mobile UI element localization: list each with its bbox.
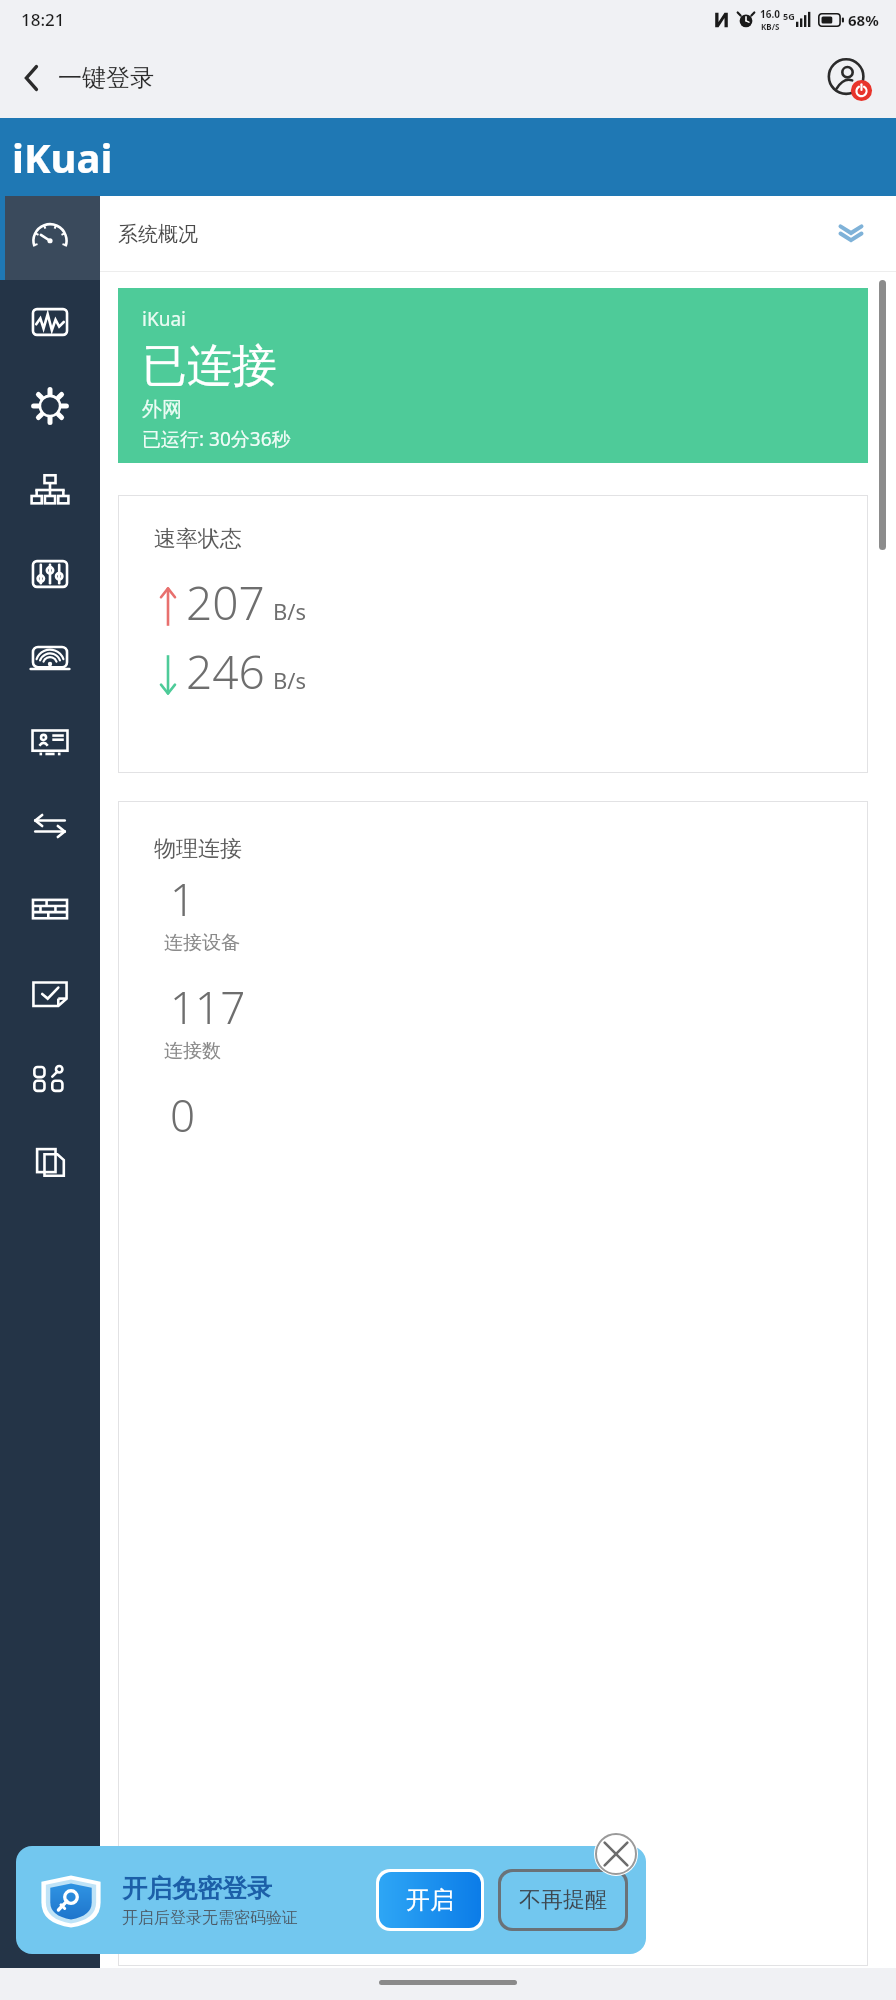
staticText: 0: [170, 1085, 196, 1145]
button[interactable]: Account power: [822, 51, 876, 105]
staticText: 连接设备: [164, 931, 240, 955]
other: Back: [22, 63, 42, 93]
staticText: 外网: [142, 397, 182, 422]
button[interactable]: iKuai: [118, 288, 868, 463]
button[interactable]: Logs: [0, 1120, 100, 1204]
other: Expand: [836, 222, 866, 246]
staticText: 已运行: 30分36秒: [142, 426, 291, 452]
button[interactable]: Close: [594, 1832, 638, 1876]
staticText: 开启: [406, 1885, 454, 1915]
staticText: B/s: [273, 665, 307, 695]
staticText: 开启免密登录: [122, 1873, 272, 1904]
staticText: 5G: [783, 10, 795, 22]
staticText: 已连接: [142, 338, 277, 395]
staticText: iKuai: [142, 306, 186, 332]
button[interactable]: Network: [0, 448, 100, 532]
button[interactable]: 开启免密登录: [16, 1846, 646, 1954]
button[interactable]: Audit: [0, 952, 100, 1036]
staticText: 68%: [848, 10, 879, 30]
staticText: 246: [186, 640, 265, 703]
button[interactable]: 开启: [379, 1872, 481, 1928]
staticText: 连接数: [164, 1039, 221, 1063]
staticText: B/s: [273, 596, 307, 626]
button[interactable]: Account: [0, 700, 100, 784]
staticText: 117: [170, 977, 246, 1037]
button[interactable]: Settings: [0, 364, 100, 448]
staticText: 不再提醒: [519, 1886, 607, 1914]
staticText: 物理连接: [154, 835, 242, 863]
staticText: 16.0: [760, 7, 780, 21]
button[interactable]: 不再提醒: [501, 1872, 625, 1928]
button[interactable]: Forwarding: [0, 784, 100, 868]
button[interactable]: 物理连接: [118, 801, 868, 1966]
button[interactable]: 速率状态: [118, 495, 868, 773]
button[interactable]: Back: [14, 57, 162, 99]
staticText: 18:21: [21, 8, 65, 31]
staticText: 1: [170, 869, 196, 929]
button[interactable]: WiFi: [0, 616, 100, 700]
button[interactable]: 系统概况: [100, 196, 896, 272]
staticText: 速率状态: [154, 525, 242, 553]
staticText: 开启后登录无需密码验证: [122, 1908, 298, 1928]
button[interactable]: Monitor: [0, 280, 100, 364]
staticText: 系统概况: [118, 222, 198, 247]
button[interactable]: Dashboard: [0, 196, 100, 280]
staticText: 207: [186, 571, 265, 634]
staticText: iKuai: [12, 130, 113, 184]
staticText: 一键登录: [58, 63, 154, 93]
staticText: KB/S: [761, 21, 780, 32]
button[interactable]: Control: [0, 532, 100, 616]
button[interactable]: Apps: [0, 1036, 100, 1120]
button[interactable]: Firewall: [0, 868, 100, 952]
